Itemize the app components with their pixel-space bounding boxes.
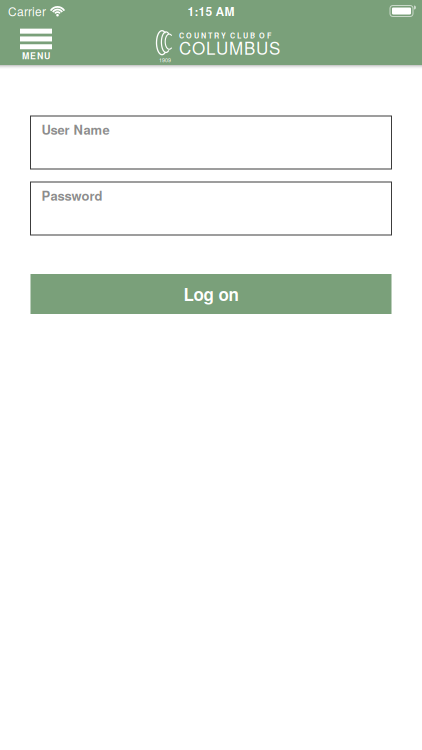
staticText: C O U N T R Y C L U B O F (179, 30, 271, 41)
button[interactable]: Password (30, 182, 391, 235)
staticText: M E N U (22, 49, 50, 62)
button[interactable]: Menu (20, 25, 52, 62)
staticText: C O L U M B U S (179, 35, 280, 60)
button[interactable]: User Name (30, 116, 391, 169)
staticText: Carrier (8, 2, 46, 20)
button[interactable]: Log on (30, 274, 391, 314)
staticText: Password (41, 186, 102, 205)
staticText: User Name (41, 120, 109, 139)
staticText: 1:15 AM (187, 2, 234, 20)
staticText: 1909 (159, 56, 171, 64)
staticText: Log on (183, 282, 238, 306)
